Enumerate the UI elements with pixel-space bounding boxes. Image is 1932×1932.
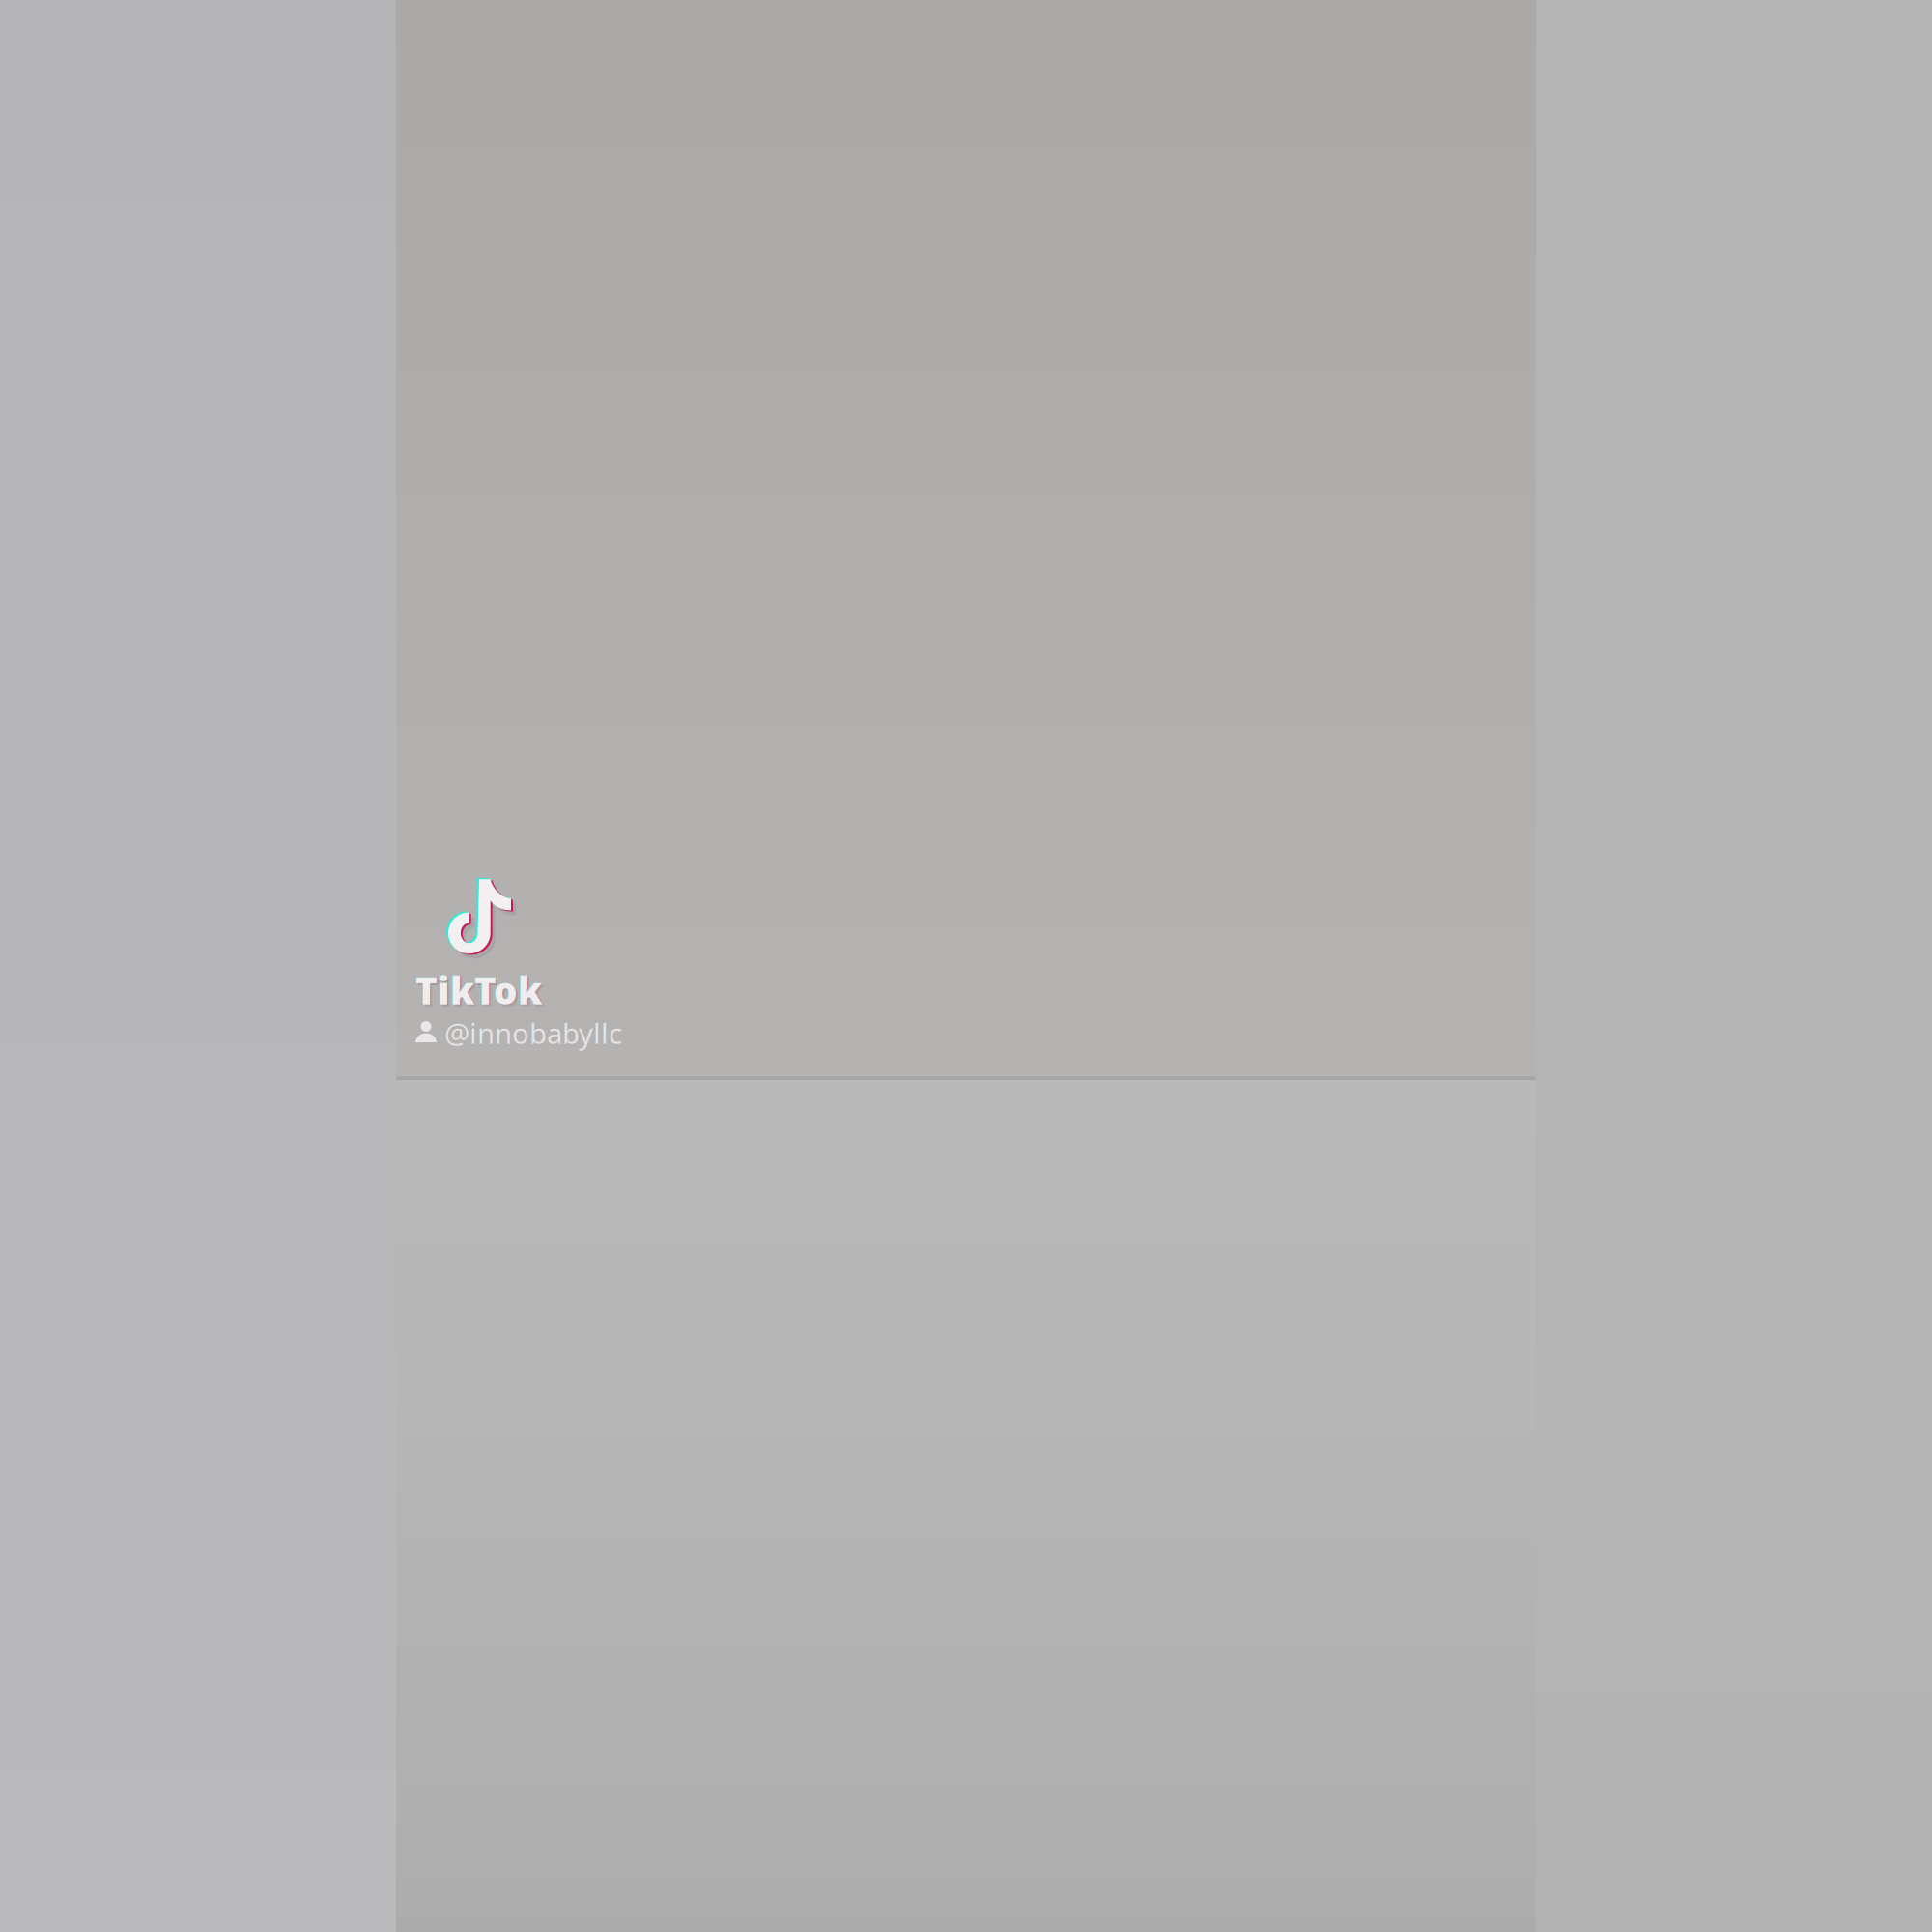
button[interactable]: TikTok @innobabyllc (413, 879, 636, 1053)
staticText: TikTok (416, 965, 543, 1015)
staticText: TikTok (417, 967, 544, 1017)
staticText: @innobabyllc (444, 1014, 622, 1052)
staticText: TikTok (415, 965, 542, 1015)
staticText: TikTok (415, 965, 541, 1014)
